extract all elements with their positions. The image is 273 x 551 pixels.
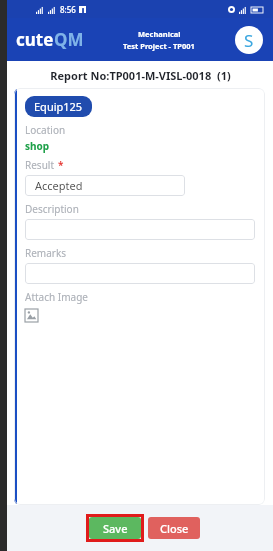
staticText: Description: [25, 202, 79, 216]
button[interactable]: Account: [235, 26, 263, 54]
staticText: Accepted: [35, 178, 83, 193]
button[interactable]: [25, 219, 255, 240]
button[interactable]: Close: [148, 517, 200, 539]
staticText: 8:56: [60, 4, 76, 15]
staticText: Remarks: [25, 246, 67, 260]
staticText: Close: [160, 521, 189, 536]
staticText: Attach Image: [25, 290, 88, 304]
button[interactable]: Accepted: [25, 175, 185, 196]
staticText: QM: [54, 28, 84, 51]
button[interactable]: Attach image: [25, 309, 38, 322]
staticText: Result: [25, 158, 55, 172]
staticText: S: [244, 29, 254, 52]
staticText: Save: [103, 521, 128, 536]
staticText: Equip125: [34, 99, 83, 114]
staticText: Mechanical: [138, 29, 181, 39]
staticText: Test Project - TP001: [123, 41, 195, 51]
staticText: shop: [25, 139, 50, 153]
button[interactable]: [25, 263, 255, 284]
button[interactable]: Save: [89, 517, 141, 539]
staticText: Report No:TP001-M-VISL-0018 (1): [50, 68, 231, 83]
staticText: *: [58, 158, 64, 172]
staticText: cute: [16, 28, 54, 51]
button[interactable]: Equip125: [25, 96, 92, 117]
staticText: Location: [25, 123, 66, 137]
